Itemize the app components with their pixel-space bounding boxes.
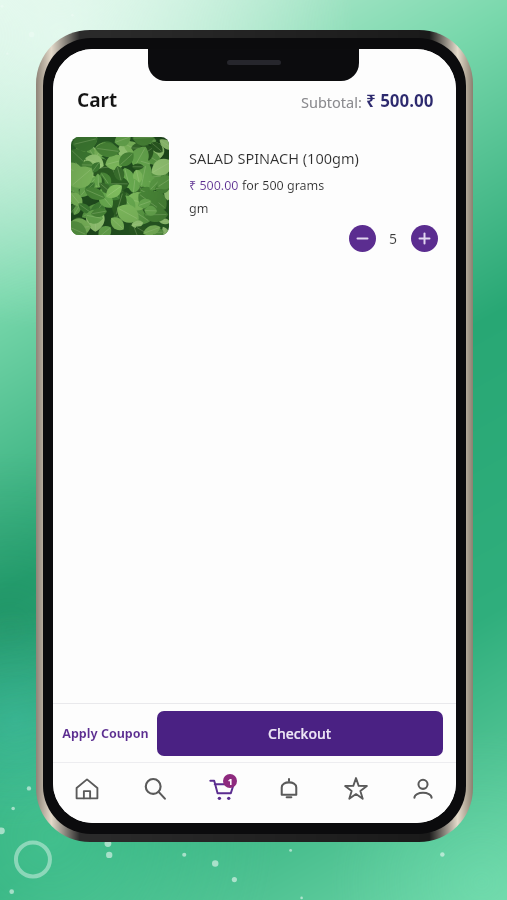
button[interactable]: Favorites	[322, 763, 389, 815]
button[interactable]: Decrease quantity	[349, 225, 376, 252]
staticText: Subtotal:	[301, 92, 366, 112]
button[interactable]: Notifications	[255, 763, 322, 815]
staticText: Cart	[77, 87, 118, 113]
button[interactable]: Search	[121, 763, 188, 815]
staticText: 1	[228, 776, 233, 787]
staticText: 5	[389, 229, 398, 248]
button[interactable]: Profile	[389, 763, 456, 815]
staticText: for 500 grams	[242, 177, 325, 194]
staticText: gm	[189, 200, 209, 217]
staticText: Checkout	[268, 724, 332, 743]
button[interactable]: Checkout	[157, 711, 443, 756]
button[interactable]: Apply Coupon	[53, 704, 157, 762]
button[interactable]: Cart	[188, 763, 255, 815]
staticText: ₹ 500.00	[366, 89, 434, 112]
staticText: ₹ 500.00	[189, 177, 242, 194]
staticText: SALAD SPINACH (100gm)	[189, 148, 359, 168]
button[interactable]: SALAD SPINACH (100gm)	[53, 137, 456, 252]
staticText: Apply Coupon	[62, 725, 149, 742]
button[interactable]: Home	[53, 763, 121, 815]
button[interactable]: Increase quantity	[411, 225, 438, 252]
